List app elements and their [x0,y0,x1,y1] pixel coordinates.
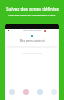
staticText: Suivez des zones définies [6,6,59,12]
staticText: pour être notifié des changements à veni… [8,13,56,16]
button[interactable]: Favoris [23,89,29,95]
button[interactable]: Profil [9,89,15,95]
button[interactable]: Back [7,29,9,31]
staticText: Aucune zone suivie [22,52,42,55]
staticText: Mes zones suivies [23,29,42,32]
staticText: Mes zones suivies ici [20,39,45,43]
button[interactable]: Carte [37,89,43,95]
button[interactable]: Plus [51,89,57,95]
